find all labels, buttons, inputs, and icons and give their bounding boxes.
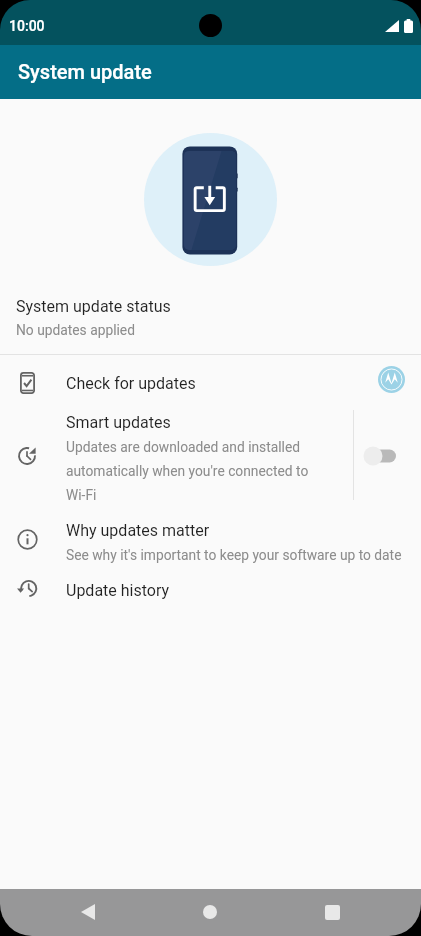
button[interactable]: Why updates matter — [0, 509, 421, 564]
staticText: No updates applied — [16, 322, 135, 338]
staticText: 10:00 — [9, 18, 45, 34]
button[interactable]: Recent apps — [312, 892, 352, 932]
button[interactable]: Back — [68, 892, 108, 932]
button[interactable]: Update history — [0, 564, 421, 612]
staticText: System update — [18, 60, 152, 83]
staticText: Check for updates — [66, 374, 196, 393]
button[interactable]: Home — [190, 892, 230, 932]
staticText: Updates are downloaded and installed aut… — [66, 439, 322, 503]
button[interactable]: Smart updates toggle — [362, 439, 406, 473]
staticText: Smart updates — [66, 413, 171, 432]
staticText: Update history — [66, 581, 170, 600]
button[interactable]: Smart updates — [0, 404, 421, 509]
button[interactable]: Check for updates — [0, 354, 421, 404]
staticText: Why updates matter — [66, 521, 210, 540]
staticText: System update status — [16, 297, 171, 316]
staticText: See why it's important to keep your soft… — [66, 547, 402, 563]
